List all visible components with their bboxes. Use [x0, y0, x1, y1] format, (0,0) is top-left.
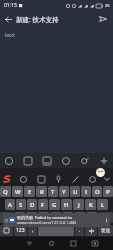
button[interactable]: Home	[40, 237, 62, 250]
staticText: T	[51, 188, 55, 196]
button[interactable]: Switch language	[85, 225, 97, 236]
button[interactable]: Voice input	[50, 173, 67, 185]
staticText: S	[19, 201, 23, 209]
button[interactable]: 123	[14, 225, 27, 236]
button[interactable]: Send	[98, 225, 113, 236]
button[interactable]: H	[61, 199, 72, 210]
button[interactable]: Search	[84, 173, 101, 185]
button[interactable]: ,	[28, 225, 37, 236]
staticText: www.mtoscil.com/127.0.0.1:443	[17, 220, 77, 225]
button[interactable]: E	[24, 186, 35, 197]
button[interactable]: Screenshot	[84, 237, 106, 250]
button[interactable]: T	[48, 186, 58, 197]
button[interactable]: X	[26, 212, 37, 223]
button[interactable]: Emoji sticker	[96, 168, 105, 177]
button[interactable]: Backspace	[98, 212, 113, 223]
button[interactable]: B	[62, 212, 73, 223]
staticText: A	[8, 201, 12, 209]
button[interactable]: K	[85, 199, 96, 210]
button[interactable]: Shift	[0, 212, 14, 223]
button[interactable]: Theme	[56, 153, 75, 168]
button[interactable]: J	[73, 199, 84, 210]
button[interactable]: M	[86, 212, 97, 223]
button[interactable]: F	[38, 199, 48, 210]
staticText: P	[106, 188, 110, 196]
button[interactable]: L	[97, 199, 108, 210]
staticText: 中	[89, 228, 94, 234]
button[interactable]: Settings	[14, 173, 32, 185]
staticText: B	[66, 214, 70, 222]
button[interactable]: Z	[15, 212, 25, 223]
staticText: H	[64, 201, 69, 209]
button[interactable]: N	[74, 212, 85, 223]
button[interactable]: 取消失败 Failed to connect to	[3, 213, 110, 227]
button[interactable]: W	[12, 186, 23, 197]
button[interactable]: Back	[19, 237, 40, 250]
button[interactable]: Gallery	[37, 153, 56, 168]
staticText: I	[85, 188, 88, 196]
staticText: K	[89, 201, 93, 209]
staticText: W	[15, 188, 21, 196]
button[interactable]: Recents	[62, 237, 84, 250]
button[interactable]: Emoji	[0, 153, 18, 168]
staticText: text	[5, 31, 15, 38]
button[interactable]: More	[94, 153, 113, 168]
button[interactable]: Sogou	[0, 173, 14, 185]
staticText: 123	[16, 227, 25, 234]
button[interactable]: Space	[38, 225, 74, 236]
staticText: R	[40, 188, 44, 196]
button[interactable]: R	[36, 186, 47, 197]
button[interactable]: V	[50, 212, 61, 223]
staticText: 25	[105, 3, 110, 8]
button[interactable]: Collapse keyboard	[101, 173, 113, 185]
button[interactable]: G	[49, 199, 60, 210]
staticText: 01:15	[4, 2, 17, 9]
staticText: 取消失败 Failed to connect to	[17, 215, 72, 220]
button[interactable]: Q	[0, 186, 11, 197]
staticText: E	[28, 188, 32, 196]
button[interactable]: U	[70, 186, 80, 197]
staticText: U	[73, 188, 78, 196]
staticText: 发送	[101, 228, 110, 234]
staticText: Q	[3, 188, 8, 196]
button[interactable]: P	[103, 186, 113, 197]
button[interactable]: Y	[59, 186, 69, 197]
staticText: O	[95, 188, 100, 196]
button[interactable]: D	[27, 199, 37, 210]
staticText: J	[78, 201, 80, 209]
staticText: Z	[18, 214, 22, 222]
staticText: F	[41, 201, 45, 209]
button[interactable]: Send	[95, 11, 111, 27]
staticText: L	[101, 201, 105, 209]
staticText: 新建: 技术支持	[16, 15, 95, 24]
staticText: .	[79, 227, 81, 234]
button[interactable]: Clipboard	[32, 173, 50, 185]
staticText: ,	[32, 227, 34, 234]
button[interactable]: A	[5, 199, 15, 210]
button[interactable]: C	[38, 212, 49, 223]
button[interactable]: Sticker	[18, 153, 37, 168]
staticText: G	[52, 201, 57, 209]
button[interactable]: Input method	[0, 225, 13, 236]
button[interactable]: Voice	[75, 153, 94, 168]
staticText: V	[54, 214, 58, 222]
button[interactable]: Back	[0, 11, 16, 27]
button[interactable]: .	[75, 225, 84, 236]
button[interactable]: Dismiss	[103, 213, 110, 227]
staticText: X	[30, 214, 34, 222]
button[interactable]: I	[81, 186, 91, 197]
button[interactable]: S	[16, 199, 26, 210]
button[interactable]: Handwriting	[67, 173, 84, 185]
staticText: C	[42, 214, 46, 222]
button[interactable]: O	[92, 186, 102, 197]
staticText: Y	[62, 188, 66, 196]
staticText: D	[30, 201, 35, 209]
